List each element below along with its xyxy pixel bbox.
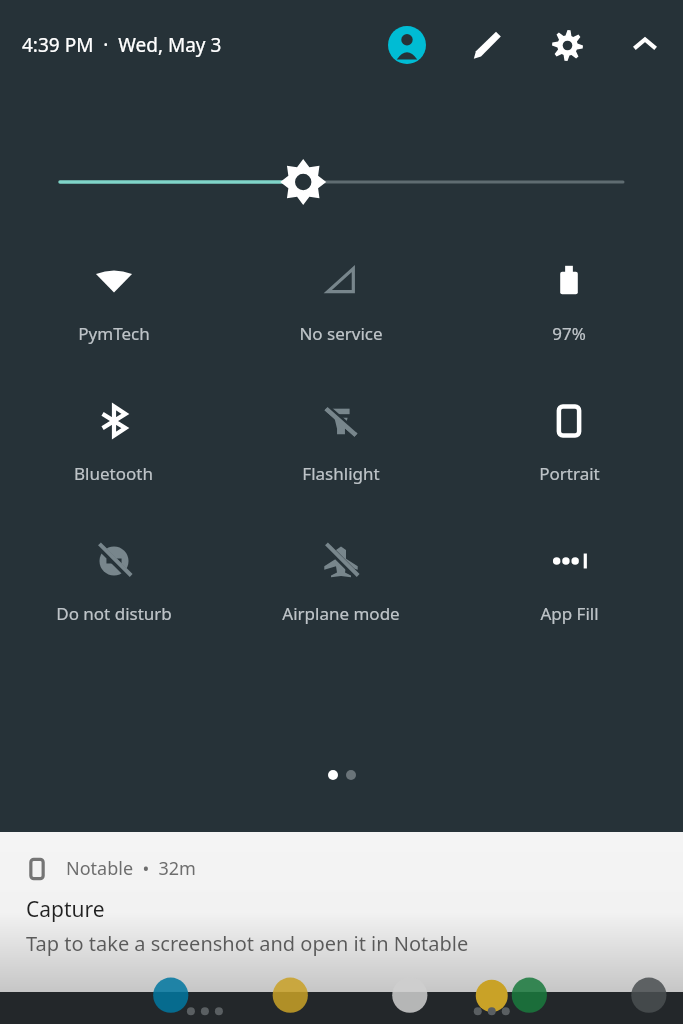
staticText: Bluetooth — [74, 462, 153, 485]
staticText: 4:39 PM · Wed, May 3 — [22, 32, 222, 58]
button[interactable]: PymTech — [0, 250, 227, 345]
button[interactable]: No service — [227, 250, 455, 345]
button[interactable]: Do not disturb — [0, 530, 227, 625]
staticText: 97% — [552, 322, 586, 345]
button[interactable]: App Fill — [455, 530, 683, 625]
button[interactable]: Notable • 32m — [0, 832, 683, 992]
button[interactable]: Flashlight — [227, 390, 455, 485]
button[interactable]: Brightness — [60, 150, 623, 214]
staticText: Airplane mode — [282, 602, 400, 625]
staticText: Notable • 32m — [66, 856, 196, 881]
staticText: App Fill — [540, 602, 599, 625]
staticText: PymTech — [78, 322, 150, 345]
button[interactable]: Bluetooth — [0, 390, 227, 485]
button[interactable]: 97% — [455, 250, 683, 345]
button[interactable]: Edit — [463, 21, 511, 69]
button[interactable]: Airplane mode — [227, 530, 455, 625]
staticText: No service — [299, 322, 383, 345]
button[interactable]: User account — [383, 21, 431, 69]
staticText: Capture — [26, 895, 105, 924]
staticText: Do not disturb — [56, 602, 172, 625]
button[interactable]: Portrait — [455, 390, 683, 485]
staticText: Portrait — [539, 462, 600, 485]
staticText: Flashlight — [302, 462, 380, 485]
staticText: Tap to take a screenshot and open it in … — [26, 930, 469, 957]
button[interactable]: Collapse — [621, 21, 669, 69]
button[interactable]: Settings — [543, 21, 591, 69]
